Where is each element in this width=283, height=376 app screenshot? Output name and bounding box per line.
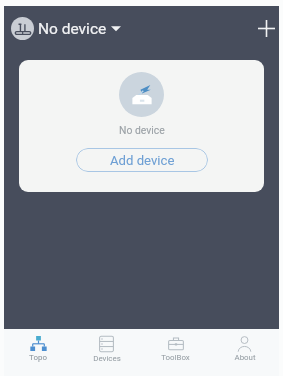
button[interactable]: Devices [72, 329, 141, 376]
staticText: ToolBox [161, 353, 190, 362]
staticText: About [234, 353, 256, 362]
staticText: No device [38, 20, 107, 38]
button[interactable]: Topo [4, 329, 72, 376]
staticText: No device [119, 124, 165, 136]
staticText: Add device [110, 153, 175, 168]
button[interactable]: Add device [254, 8, 279, 48]
button[interactable]: About [210, 329, 279, 376]
button[interactable]: Add device [76, 148, 208, 172]
button[interactable]: ToolBox [141, 329, 210, 376]
staticText: Topo [29, 353, 47, 362]
button[interactable]: No device [4, 11, 131, 46]
staticText: Devices [93, 354, 121, 363]
